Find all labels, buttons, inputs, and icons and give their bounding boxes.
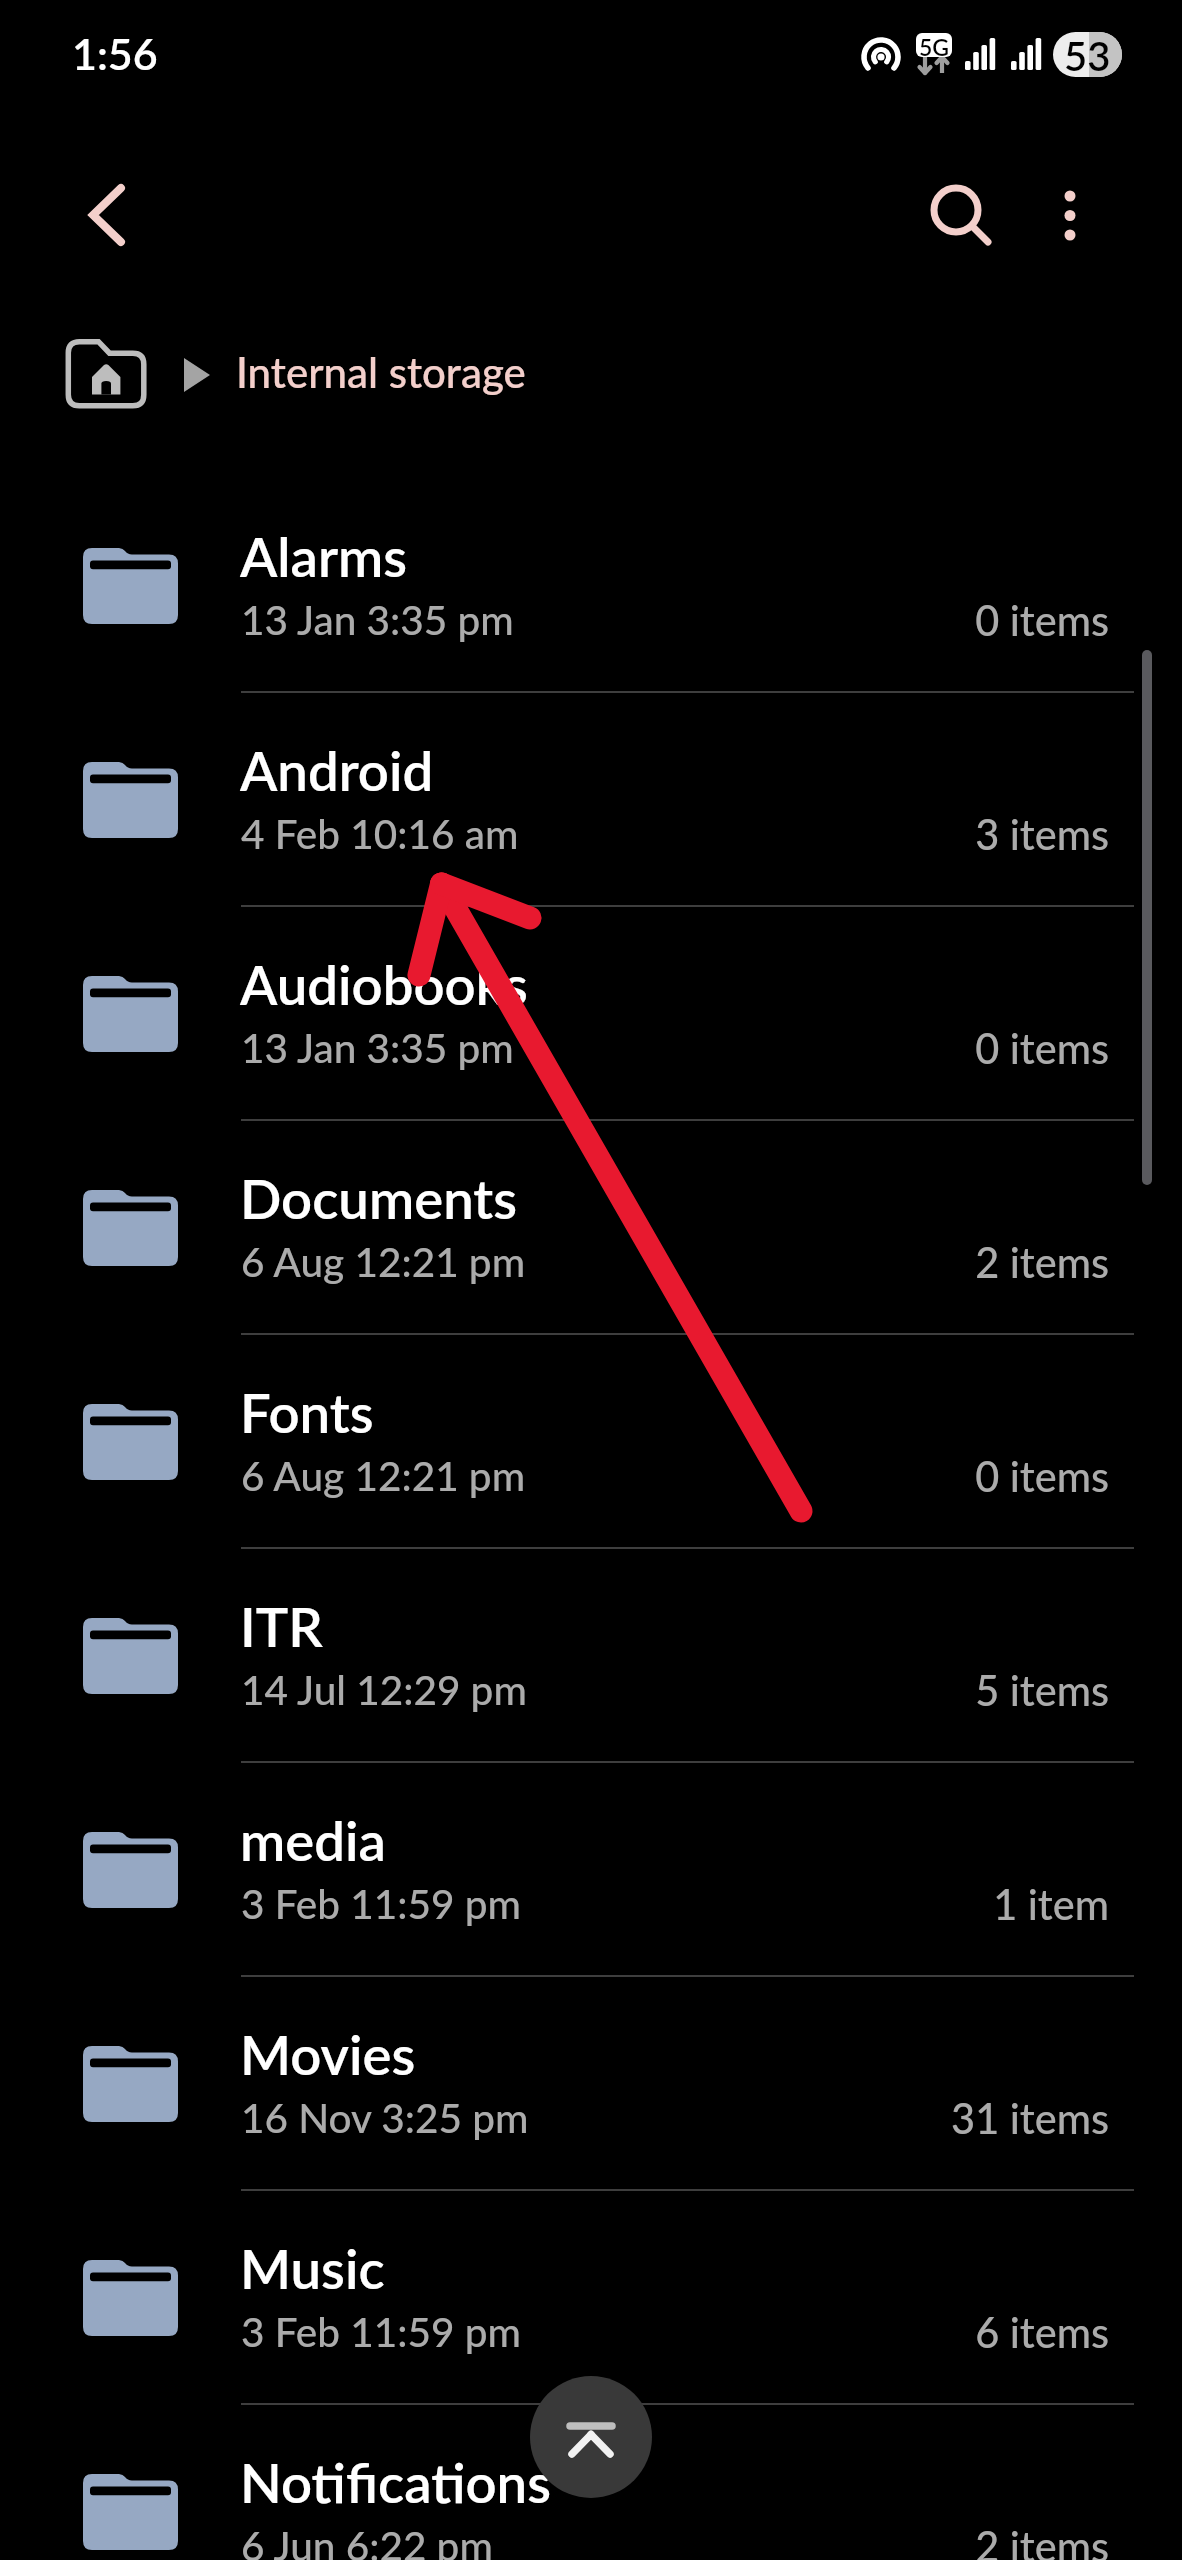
staticText: 53: [1064, 32, 1111, 77]
staticText: 2 items: [0, 2521, 1109, 2560]
button[interactable]: Notifications: [0, 2404, 1182, 2560]
button[interactable]: media: [0, 1762, 1182, 1976]
button[interactable]: Music: [0, 2190, 1182, 2404]
staticText: 14 Jul 12:29 pm: [241, 1665, 527, 1714]
staticText: 5 items: [0, 1665, 1109, 1715]
staticText: 13 Jan 3:35 pm: [241, 595, 514, 644]
button[interactable]: Scroll to top: [530, 2376, 652, 2498]
button[interactable]: Documents: [0, 1120, 1182, 1334]
staticText: Audiobooks: [240, 951, 528, 1016]
button[interactable]: ITR: [0, 1548, 1182, 1762]
staticText: Fonts: [240, 1379, 374, 1444]
staticText: Android: [240, 737, 434, 802]
button[interactable]: Android: [0, 692, 1182, 906]
staticText: 6 Aug 12:21 pm: [241, 1237, 526, 1286]
button[interactable]: Search: [908, 162, 1004, 258]
staticText: 4 Feb 10:16 am: [241, 809, 519, 858]
staticText: ITR: [240, 1593, 323, 1658]
staticText: 16 Nov 3:25 pm: [241, 2093, 529, 2142]
staticText: 3 items: [0, 809, 1109, 859]
staticText: 6 Jun 6:22 pm: [241, 2521, 493, 2560]
staticText: 1:56: [72, 28, 158, 80]
button[interactable]: Movies: [0, 1976, 1182, 2190]
staticText: 3 Feb 11:59 pm: [241, 2307, 521, 2356]
staticText: 13 Jan 3:35 pm: [241, 1023, 514, 1072]
button[interactable]: Home folder: [62, 336, 150, 412]
staticText: 1 item: [0, 1879, 1109, 1929]
button[interactable]: Alarms: [0, 478, 1182, 692]
staticText: 0 items: [0, 595, 1109, 645]
button[interactable]: More options: [1022, 167, 1118, 263]
staticText: 0 items: [0, 1023, 1109, 1073]
staticText: 5G: [919, 33, 950, 57]
button[interactable]: Audiobooks: [0, 906, 1182, 1120]
staticText: Alarms: [240, 523, 408, 588]
button[interactable]: Internal storage: [228, 330, 532, 420]
staticText: 0 items: [0, 1451, 1109, 1501]
staticText: 6 items: [0, 2307, 1109, 2357]
staticText: 2 items: [0, 1237, 1109, 1287]
staticText: Internal storage: [236, 347, 526, 397]
staticText: media: [240, 1807, 386, 1872]
staticText: 6 Aug 12:21 pm: [241, 1451, 526, 1500]
staticText: Movies: [240, 2021, 416, 2086]
staticText: Notifications: [240, 2449, 551, 2514]
staticText: 3 Feb 11:59 pm: [241, 1879, 521, 1928]
staticText: 31 items: [0, 2093, 1109, 2143]
staticText: Music: [240, 2235, 385, 2300]
button[interactable]: Fonts: [0, 1334, 1182, 1548]
staticText: Documents: [240, 1165, 518, 1230]
button[interactable]: Back: [45, 167, 141, 263]
